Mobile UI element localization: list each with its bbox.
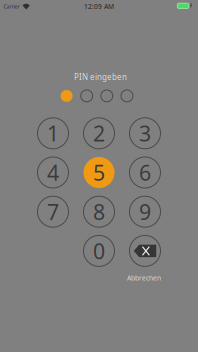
staticText: 1 <box>47 119 59 147</box>
staticText: 2 <box>93 119 105 147</box>
button[interactable]: 8 <box>83 196 114 227</box>
staticText: 9 <box>139 197 151 226</box>
button[interactable]: 4 <box>37 157 68 188</box>
button[interactable]: 2 <box>83 118 114 149</box>
staticText: 5 <box>93 158 105 187</box>
button[interactable]: 9 <box>129 196 160 227</box>
staticText: Carrier <box>3 3 19 10</box>
staticText: 4 <box>47 158 59 187</box>
button[interactable]: Abbrechen <box>125 273 164 282</box>
staticText: 7 <box>47 197 59 226</box>
staticText: 8 <box>93 197 105 226</box>
button[interactable]: 0 <box>83 235 114 266</box>
button[interactable]: 3 <box>129 118 160 149</box>
staticText: 3 <box>139 119 151 147</box>
staticText: Abbrechen <box>127 273 161 282</box>
button[interactable]: Löschen <box>129 235 160 266</box>
button[interactable]: 6 <box>129 157 160 188</box>
staticText: 12:09 AM <box>84 2 114 11</box>
staticText: 6 <box>139 158 151 187</box>
staticText: 0 <box>93 237 105 265</box>
button[interactable]: 7 <box>37 196 68 227</box>
button[interactable]: 5 <box>83 157 114 188</box>
staticText: PIN eingeben <box>74 72 127 82</box>
button[interactable]: 1 <box>37 118 68 149</box>
